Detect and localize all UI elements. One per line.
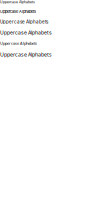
staticText: Uppercase Alphabets [0,29,52,36]
staticText: Uppercase Alphabets [0,19,48,24]
staticText: Uppercase Alphabets [0,0,35,4]
staticText: Uppercase Alphabets [0,41,37,46]
staticText: Uppercase Alphabets [0,51,52,58]
staticText: Uppercase Alphabets [0,9,36,14]
